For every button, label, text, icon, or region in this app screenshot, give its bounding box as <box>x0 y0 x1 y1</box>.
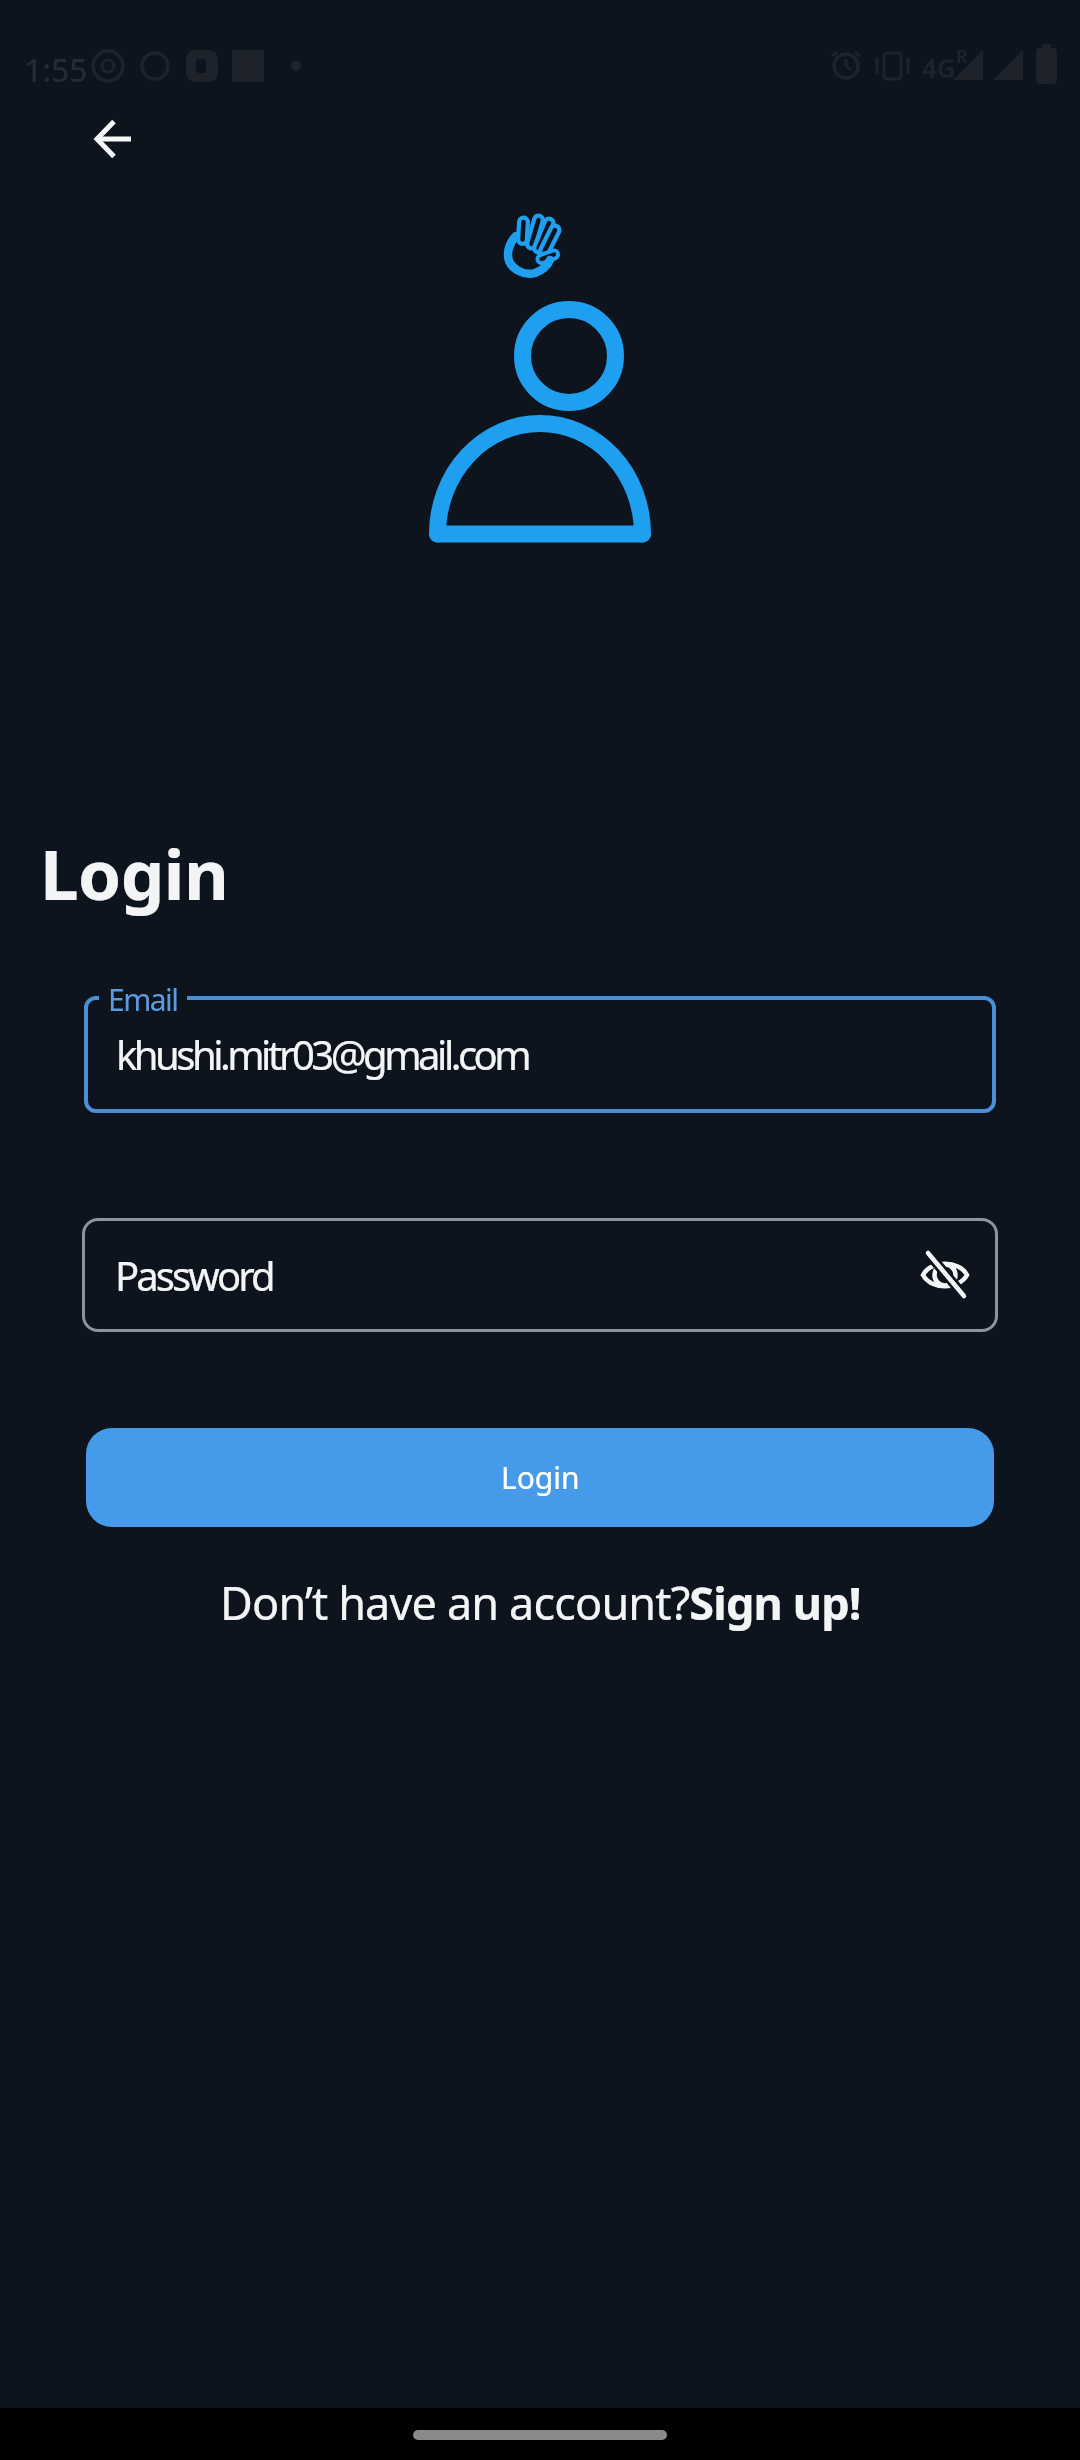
staticText: R <box>956 44 968 69</box>
staticText: Email <box>108 979 178 1020</box>
staticText: khushi.mitr03@gmail.com <box>116 1027 529 1081</box>
button[interactable]: khushi.mitr03@gmail.com <box>84 996 996 1113</box>
staticText: 1:55 <box>24 48 88 92</box>
button[interactable]: Don’t have an account?Sign up! <box>220 1572 861 1633</box>
button[interactable]: Login <box>86 1428 994 1527</box>
staticText: Password <box>115 1248 273 1302</box>
button[interactable]: Password <box>82 1218 998 1332</box>
staticText: Login <box>501 1457 580 1498</box>
staticText: Login <box>40 826 229 920</box>
button[interactable] <box>78 104 148 174</box>
staticText: 4G <box>922 50 956 85</box>
